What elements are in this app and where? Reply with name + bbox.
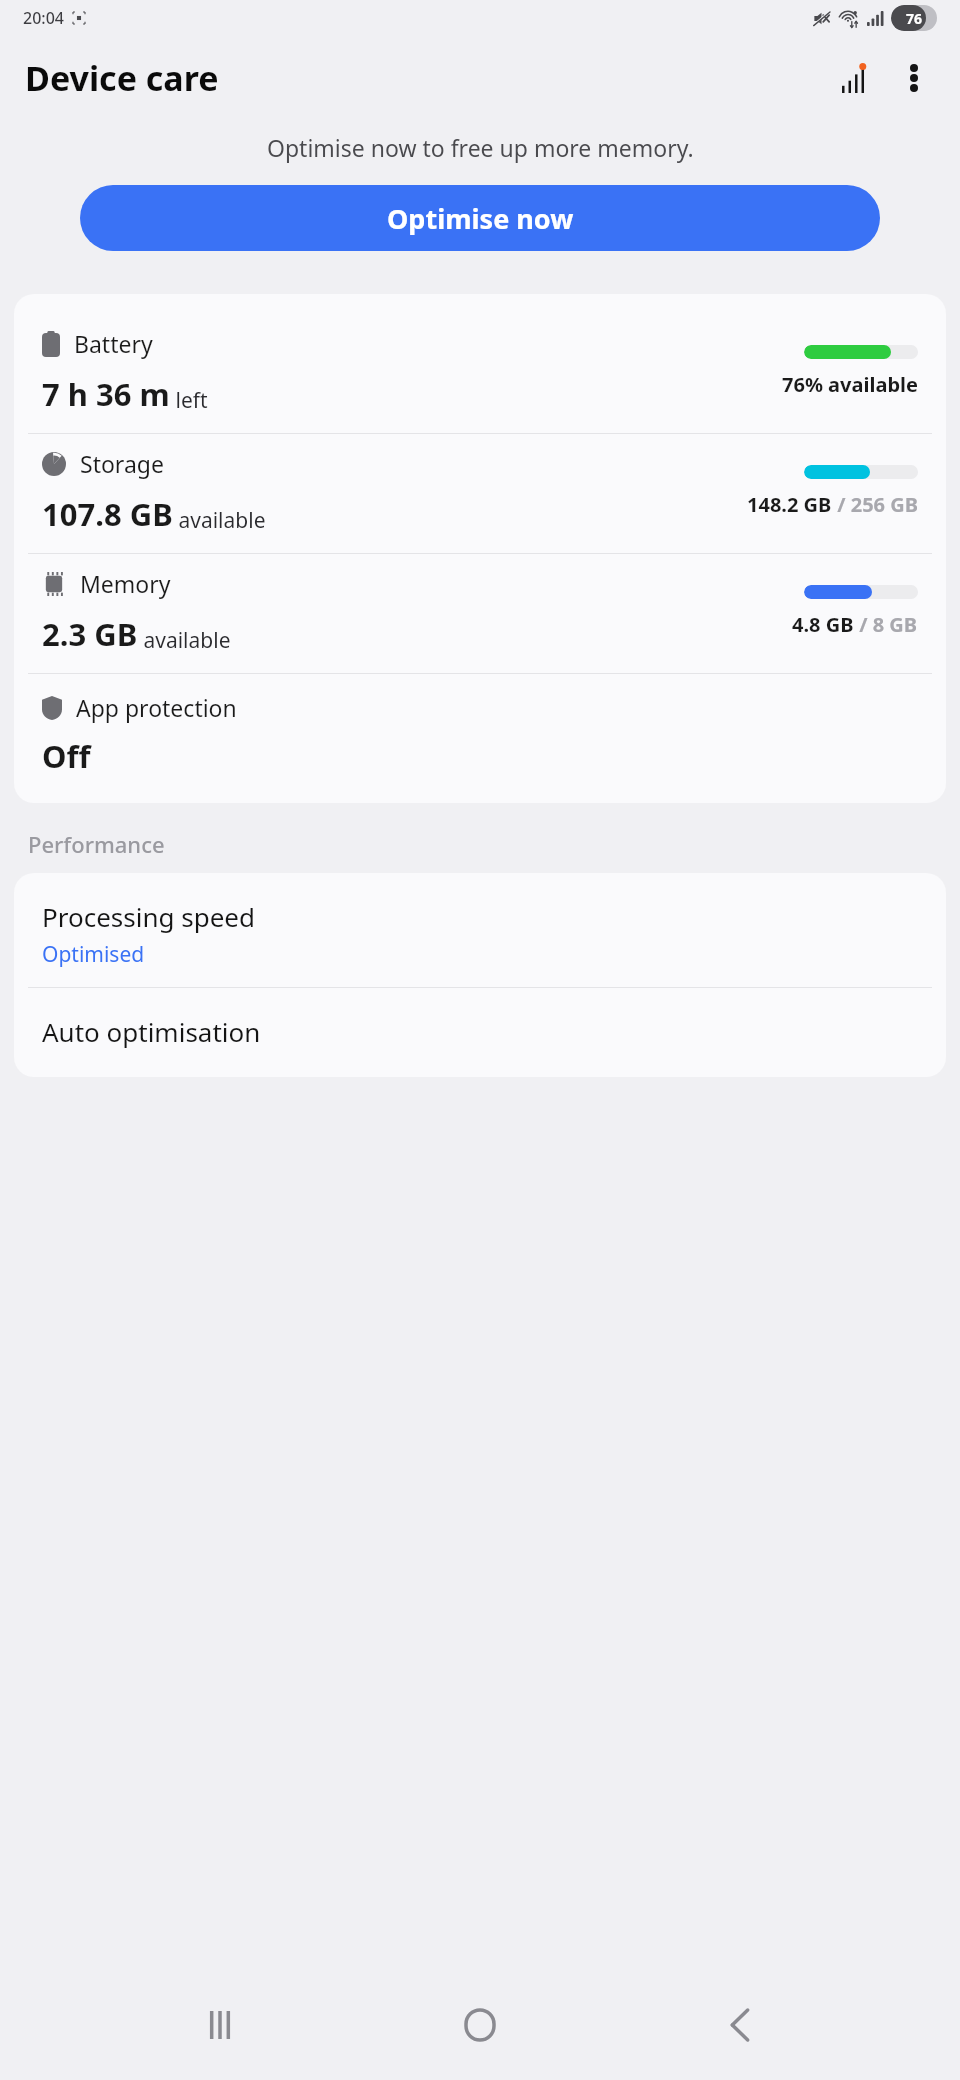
staticText: 76 [906, 9, 923, 28]
staticText: available [138, 626, 231, 655]
staticText: / 256 GB [832, 491, 918, 518]
staticText: Auto optimisation [42, 1014, 261, 1049]
button[interactable]: Processing speed [14, 873, 946, 987]
button[interactable]: Auto optimisation [14, 988, 946, 1077]
staticText: 7 h 36 m [42, 373, 170, 415]
staticText: / 8 GB [854, 611, 918, 638]
staticText: available [173, 506, 266, 535]
staticText: 2.3 GB [42, 613, 138, 655]
staticText: left [170, 386, 208, 415]
staticText: Optimise now [387, 200, 574, 237]
button[interactable]: Home [440, 1985, 520, 2065]
button[interactable]: Usage statistics [828, 52, 880, 104]
staticText: App protection [76, 692, 237, 723]
staticText: Device care [25, 55, 219, 101]
staticText: Battery [74, 328, 153, 359]
staticText: 148.2 GB [747, 491, 832, 518]
button[interactable]: Memory [14, 554, 946, 673]
staticText: 107.8 GB [42, 493, 173, 535]
staticText: 4.8 GB [792, 611, 854, 638]
button[interactable]: App protection [14, 674, 946, 803]
button[interactable]: Storage [14, 434, 946, 553]
staticText: 76% available [782, 371, 918, 398]
staticText: Performance [28, 829, 165, 859]
staticText: Off [42, 735, 91, 777]
staticText: Optimise now to free up more memory. [267, 132, 694, 163]
staticText: Optimised [42, 940, 145, 969]
staticText: Storage [80, 448, 164, 479]
staticText: Processing speed [42, 899, 256, 934]
staticText: 20:04 [23, 7, 64, 29]
button[interactable]: Optimise now [80, 185, 880, 251]
button[interactable]: Battery [14, 314, 946, 433]
button[interactable]: Recent apps [180, 1985, 260, 2065]
button[interactable]: Back [700, 1985, 780, 2065]
staticText: Memory [80, 568, 171, 599]
button[interactable]: More options [888, 52, 940, 104]
